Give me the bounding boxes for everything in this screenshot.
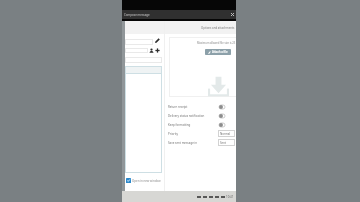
button[interactable]: Show hidden icons xyxy=(196,191,202,202)
button[interactable]: Priority xyxy=(168,129,235,138)
button[interactable]: Compose message xyxy=(122,10,236,19)
button[interactable]: Keep formatting xyxy=(168,120,225,129)
staticText: Priority xyxy=(168,132,178,136)
button[interactable]: Edit recipients xyxy=(155,38,160,43)
staticText: Compose message xyxy=(124,13,150,17)
button[interactable]: Delivery status notification xyxy=(168,111,225,120)
button[interactable]: Cc field xyxy=(125,48,148,53)
button[interactable]: Return receipt xyxy=(168,102,225,111)
button[interactable]: Add recipient xyxy=(155,48,160,53)
button[interactable]: Address book xyxy=(149,48,154,53)
staticText: Normal xyxy=(220,132,231,136)
button[interactable]: Close window xyxy=(229,10,236,19)
staticText: Keep formatting xyxy=(168,123,191,127)
staticText: 10:41 xyxy=(226,195,234,199)
button[interactable]: Subject field xyxy=(125,57,162,63)
button[interactable]: Attach a file xyxy=(205,49,231,55)
staticText: Open in new window xyxy=(132,179,161,183)
button[interactable]: Message body xyxy=(125,66,162,173)
button[interactable]: Battery xyxy=(214,191,220,202)
staticText: Sent xyxy=(220,141,227,145)
button[interactable]: Action center xyxy=(220,191,226,202)
button[interactable]: Recipient field xyxy=(125,39,153,45)
button[interactable]: Save sent message in xyxy=(168,138,235,147)
button[interactable]: Volume xyxy=(208,191,214,202)
staticText: Maximum allowed file size is 25 MB xyxy=(197,41,236,45)
staticText: Attach a file xyxy=(212,50,228,54)
staticText: Return receipt xyxy=(168,105,188,109)
button[interactable]: Open in new window xyxy=(126,178,161,183)
staticText: Delivery status notification xyxy=(168,114,205,118)
button[interactable]: Network xyxy=(202,191,208,202)
staticText: Options and attachments xyxy=(201,26,235,30)
staticText: Save sent message in xyxy=(168,141,198,145)
